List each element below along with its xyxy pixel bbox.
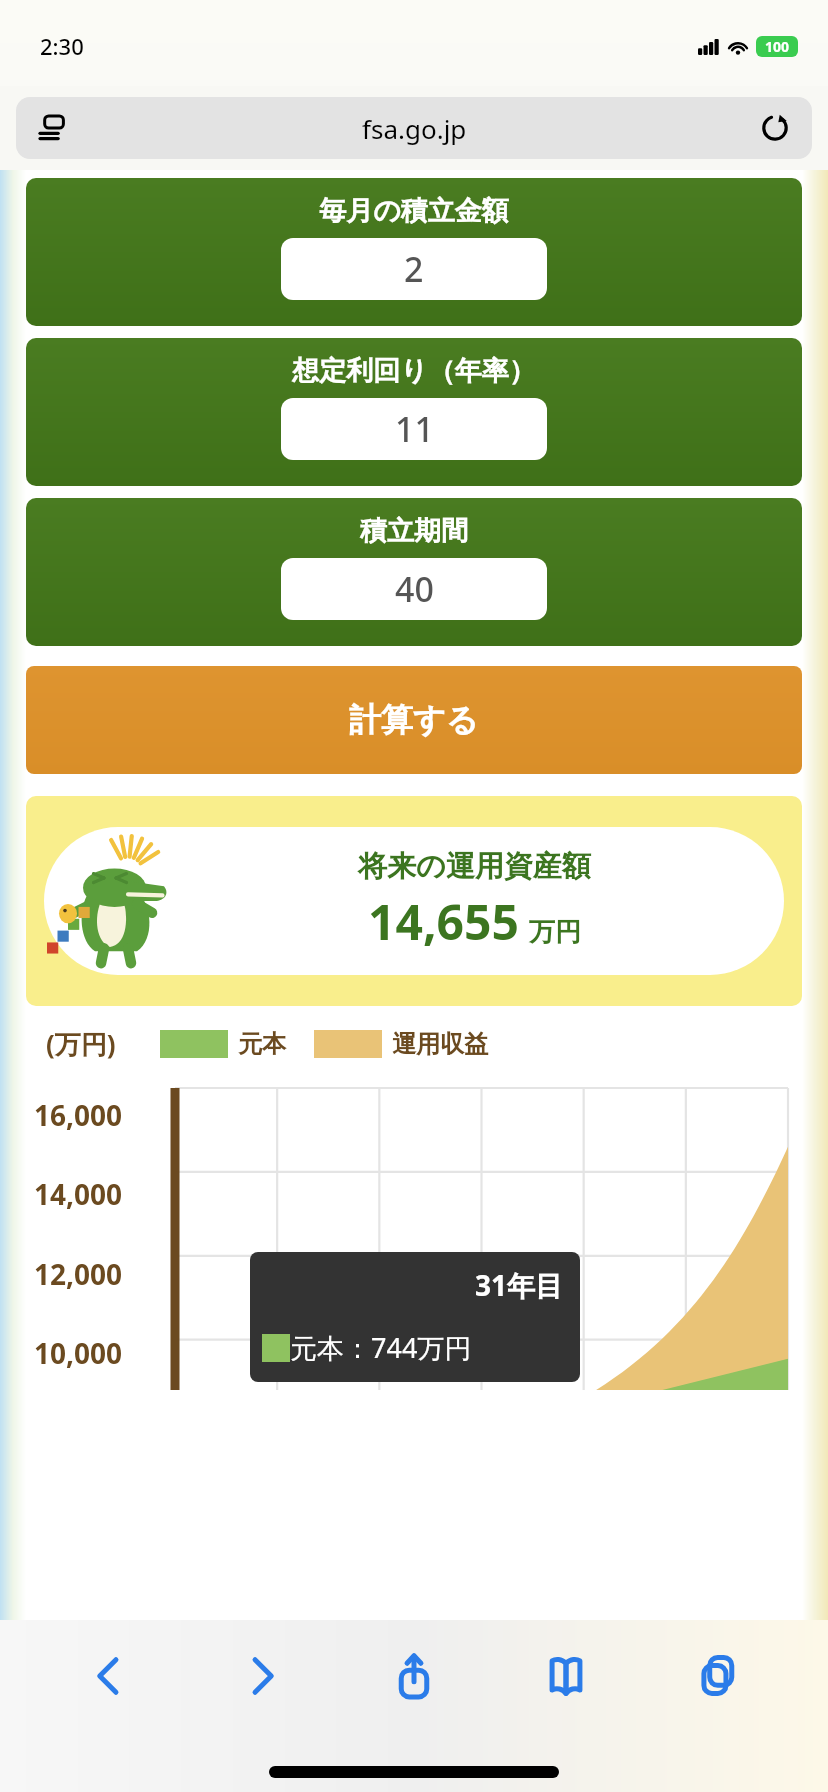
staticText: 想定利回り（年率）: [292, 354, 536, 388]
staticText: 積立期間: [360, 514, 468, 548]
staticText: 毎月の積立金額: [319, 194, 509, 228]
staticText: fsa.go.jp: [362, 111, 467, 146]
staticText: 14,655: [368, 889, 519, 954]
button[interactable]: 11: [281, 398, 547, 460]
staticText: 11: [395, 406, 434, 452]
button[interactable]: Back: [66, 1633, 152, 1719]
button[interactable]: 毎月の積立金額: [26, 178, 802, 326]
button[interactable]: Reader view: [30, 105, 76, 151]
button[interactable]: 想定利回り（年率）: [26, 338, 802, 486]
staticText: 元本：744万円: [290, 1329, 472, 1366]
staticText: 計算する: [349, 700, 479, 740]
staticText: 100: [765, 37, 790, 56]
button[interactable]: Tabs: [676, 1633, 762, 1719]
button[interactable]: 積立期間: [26, 498, 802, 646]
staticText: 将来の運用資産額: [358, 848, 591, 885]
staticText: 40: [395, 566, 434, 612]
button[interactable]: Share: [371, 1633, 457, 1719]
staticText: 万円: [529, 916, 581, 949]
button[interactable]: 計算する: [26, 666, 802, 774]
button[interactable]: Bookmarks: [523, 1633, 609, 1719]
button[interactable]: Reload: [752, 105, 798, 151]
staticText: 31年目: [475, 1266, 564, 1304]
button[interactable]: Forward: [219, 1633, 305, 1719]
staticText: 運用収益: [392, 1029, 488, 1059]
staticText: 12,000: [34, 1255, 123, 1293]
staticText: 元本: [238, 1029, 286, 1059]
button[interactable]: 2: [281, 238, 547, 300]
button[interactable]: 40: [281, 558, 547, 620]
staticText: 14,000: [34, 1175, 123, 1213]
staticText: 2:30: [40, 31, 84, 61]
staticText: 16,000: [34, 1096, 123, 1134]
staticText: (万円): [46, 1026, 116, 1062]
staticText: 2: [404, 246, 424, 292]
staticText: 10,000: [34, 1334, 123, 1372]
